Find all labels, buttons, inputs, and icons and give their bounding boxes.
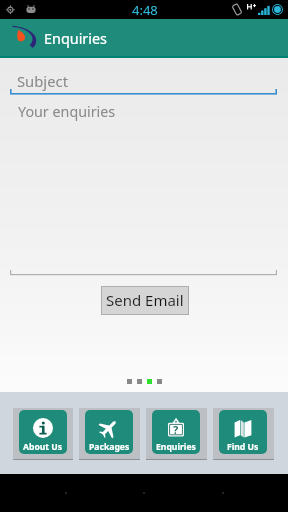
staticText: Find Us [227,441,259,453]
staticText: ? [173,422,179,437]
staticText: About Us [23,441,63,453]
staticText: Packages [89,441,130,453]
button[interactable]: About Us [13,408,73,460]
staticText: Send Email [106,290,184,310]
staticText: Enquiries [44,29,108,49]
staticText: Enquiries [156,441,196,453]
button[interactable]: Packages [79,408,140,460]
staticText: Your enquiries [18,102,116,121]
staticText: 4:48 [132,1,158,19]
button[interactable]: ? [146,408,207,460]
staticText: Subject [17,71,68,91]
button[interactable]: Send Email [102,287,188,314]
button[interactable]: Find Us [213,408,274,460]
